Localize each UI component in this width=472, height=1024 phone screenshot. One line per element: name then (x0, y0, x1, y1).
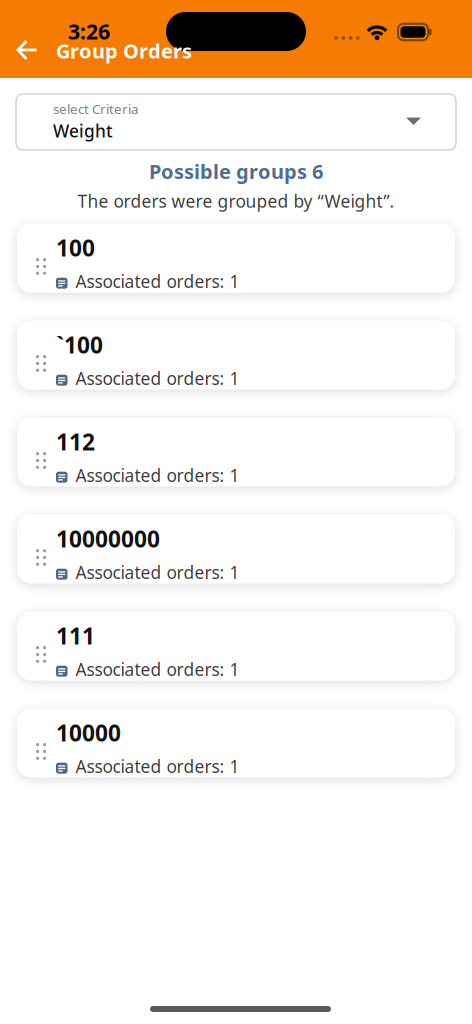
staticText: `100 (56, 330, 103, 360)
staticText: 3:26 (68, 17, 110, 45)
button[interactable]: select Criteria (16, 94, 456, 150)
staticText: 10000000 (56, 524, 160, 554)
staticText: The orders were grouped by “Weight”. (77, 190, 394, 213)
staticText: Associated orders: 1 (75, 464, 239, 487)
staticText: Associated orders: 1 (75, 367, 239, 390)
staticText: Associated orders: 1 (75, 561, 239, 584)
staticText: Associated orders: 1 (75, 755, 239, 778)
button[interactable]: 112 (17, 418, 455, 487)
button[interactable]: 10000 (17, 709, 455, 778)
button[interactable]: 100 (17, 224, 455, 293)
button[interactable]: `100 (17, 321, 455, 390)
staticText: 112 (56, 427, 95, 457)
staticText: 111 (56, 621, 95, 651)
button[interactable]: Back (5, 28, 49, 72)
staticText: Weight (53, 119, 113, 142)
staticText: Possible groups 6 (149, 158, 323, 185)
button[interactable]: 111 (17, 612, 455, 681)
staticText: Associated orders: 1 (75, 270, 239, 293)
staticText: 10000 (56, 718, 121, 748)
button[interactable]: 10000000 (17, 515, 455, 584)
staticText: Associated orders: 1 (75, 658, 239, 681)
staticText: Group Orders (56, 37, 192, 64)
staticText: select Criteria (53, 100, 138, 118)
staticText: 100 (56, 233, 95, 263)
